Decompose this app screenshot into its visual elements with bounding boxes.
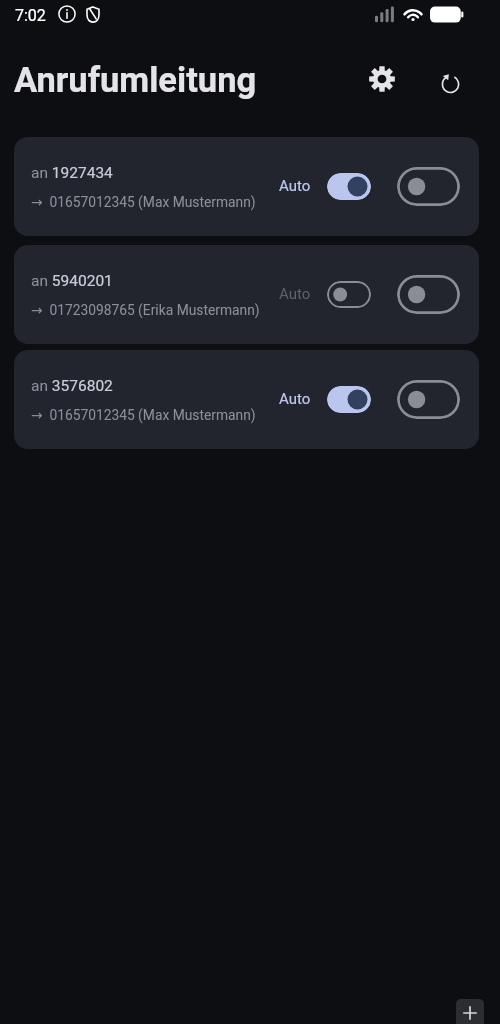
staticText: an 3576802 — [31, 377, 113, 395]
staticText: an 5940201 — [31, 272, 113, 290]
button[interactable]: Automatic forwarding — [327, 173, 371, 200]
button[interactable]: an 3576802 — [14, 350, 479, 449]
staticText: Auto — [279, 177, 311, 195]
button[interactable]: an 1927434 — [14, 137, 479, 236]
button[interactable]: Call forwarding — [397, 275, 460, 314]
staticText: → 01723098765 (Erika Mustermann) — [31, 302, 260, 318]
staticText: → 01657012345 (Max Mustermann) — [31, 407, 256, 423]
staticText: → 01657012345 (Max Mustermann) — [31, 194, 256, 210]
button[interactable]: Refresh — [428, 61, 472, 105]
button[interactable]: an 5940201 — [14, 245, 479, 344]
button[interactable]: Call forwarding — [397, 380, 460, 419]
button[interactable]: Settings — [360, 57, 404, 101]
staticText: 7:02 — [15, 6, 46, 25]
button[interactable]: Add forwarding — [456, 999, 484, 1024]
button[interactable]: Call forwarding — [397, 167, 460, 206]
button[interactable]: Automatic forwarding — [327, 386, 371, 413]
staticText: Auto — [279, 285, 311, 303]
staticText: an 1927434 — [31, 164, 113, 182]
button[interactable]: Automatic forwarding — [327, 281, 371, 308]
staticText: Auto — [279, 390, 311, 408]
staticText: Anrufumleitung — [14, 60, 257, 100]
